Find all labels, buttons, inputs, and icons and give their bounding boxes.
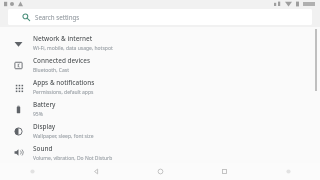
staticText: Wi-Fi, mobile, data usage, hotspot [33,45,113,52]
button[interactable]: Display [0,120,320,142]
button[interactable]: Battery [0,98,320,120]
button[interactable]: Recent apps [192,163,256,180]
button[interactable]: Connected devices [0,54,320,76]
button[interactable]: Sound [0,142,320,163]
staticText: Display [33,122,56,131]
staticText: Volume, vibration, Do Not Disturb [33,155,113,162]
staticText: Battery [33,100,56,109]
button[interactable]: Back [64,163,128,180]
staticText: Connected devices [33,56,91,65]
staticText: Apps & notifications [33,78,95,87]
staticText: Search settings [35,13,80,21]
staticText: Sound [33,144,53,153]
button[interactable]: Search settings [8,9,312,25]
staticText: Wallpaper, sleep, font size [33,133,94,140]
staticText: 95% [33,111,43,118]
staticText: Permissions, default apps [33,89,94,96]
button[interactable]: Apps & notifications [0,76,320,98]
button[interactable]: Home [128,163,192,180]
staticText: Bluetooth, Cast [33,67,70,74]
button[interactable]: Network & internet [0,32,320,54]
staticText: Network & internet [33,34,93,43]
